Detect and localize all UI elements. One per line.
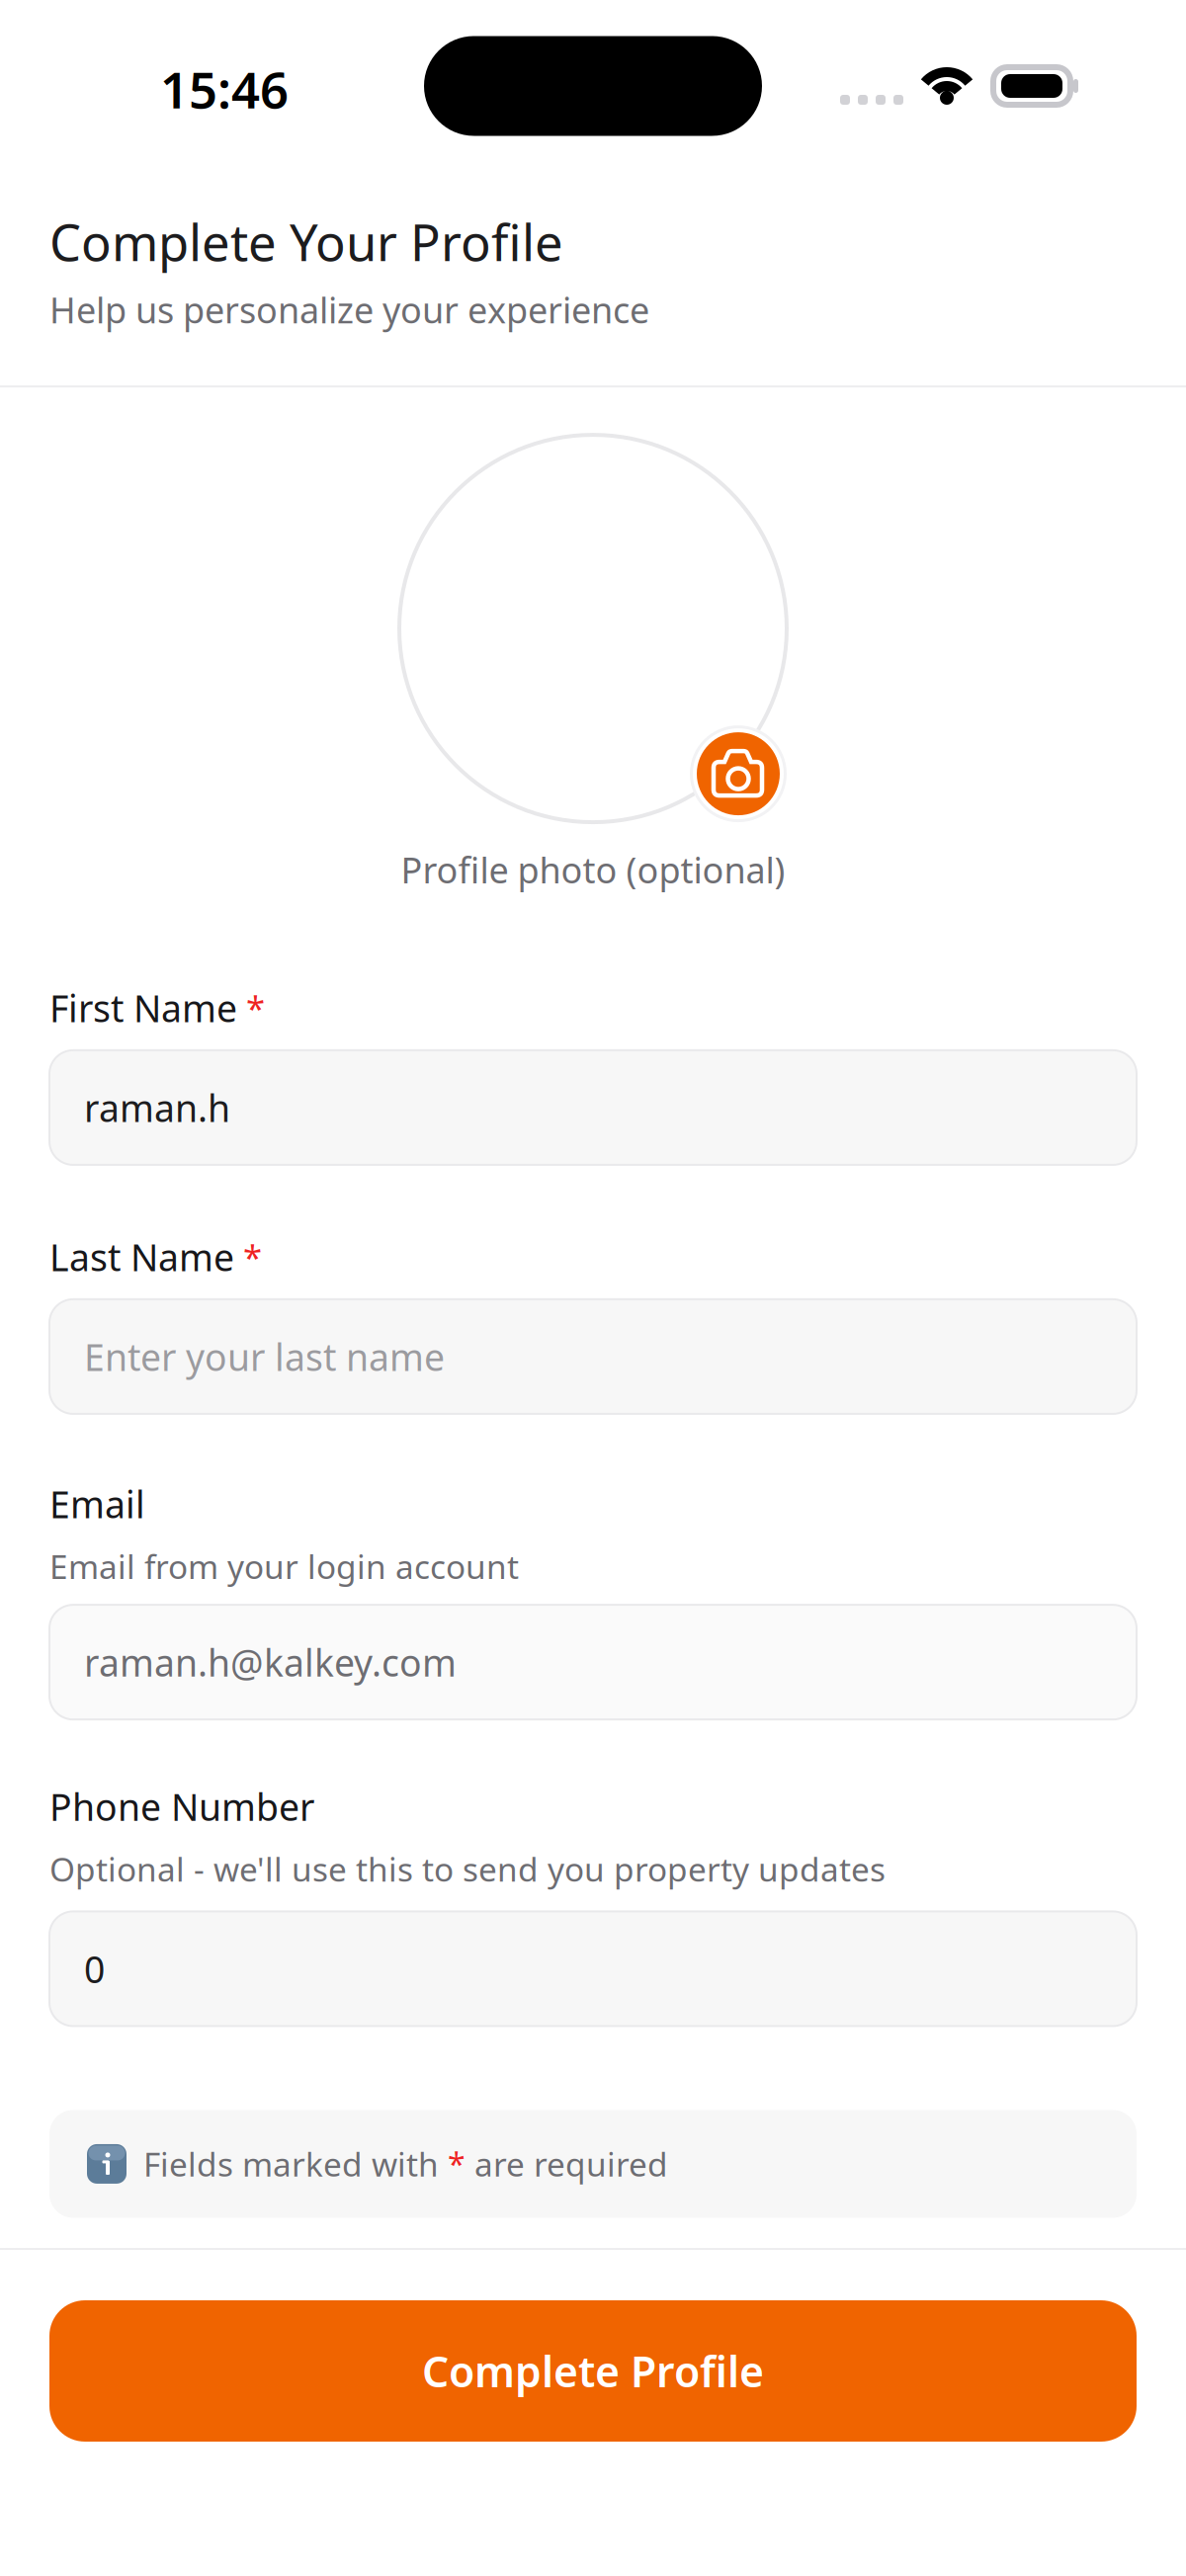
button[interactable]: raman.h: [49, 1050, 1137, 1165]
staticText: Email from your login account: [49, 1544, 519, 1588]
button[interactable]: 0: [49, 1911, 1137, 2026]
staticText: 0: [84, 1944, 105, 1993]
staticText: *: [246, 985, 265, 1030]
staticText: Phone Number: [49, 1782, 314, 1831]
staticText: *: [448, 2143, 466, 2185]
button[interactable]: raman.h@kalkey.com: [49, 1605, 1137, 1720]
button[interactable]: Enter your last name: [49, 1299, 1137, 1414]
staticText: Email: [49, 1479, 145, 1528]
staticText: raman.h@kalkey.com: [84, 1638, 457, 1687]
staticText: Fields marked with: [143, 2142, 448, 2186]
staticText: raman.h: [84, 1083, 230, 1132]
staticText: Help us personalize your experience: [49, 286, 649, 333]
button[interactable]: Complete Profile: [49, 2300, 1137, 2442]
button[interactable]: Change profile photo: [690, 725, 787, 822]
staticText: First Name: [49, 983, 237, 1032]
staticText: 15:46: [160, 56, 289, 122]
staticText: Optional - we'll use this to send you pr…: [49, 1847, 886, 1891]
staticText: Complete Your Profile: [49, 208, 563, 275]
staticText: Profile photo (optional): [401, 846, 785, 893]
staticText: Enter your last name: [84, 1332, 445, 1381]
staticText: *: [243, 1234, 262, 1280]
staticText: Last Name: [49, 1232, 234, 1281]
staticText: Complete Profile: [422, 2343, 764, 2399]
staticText: are required: [466, 2142, 668, 2186]
